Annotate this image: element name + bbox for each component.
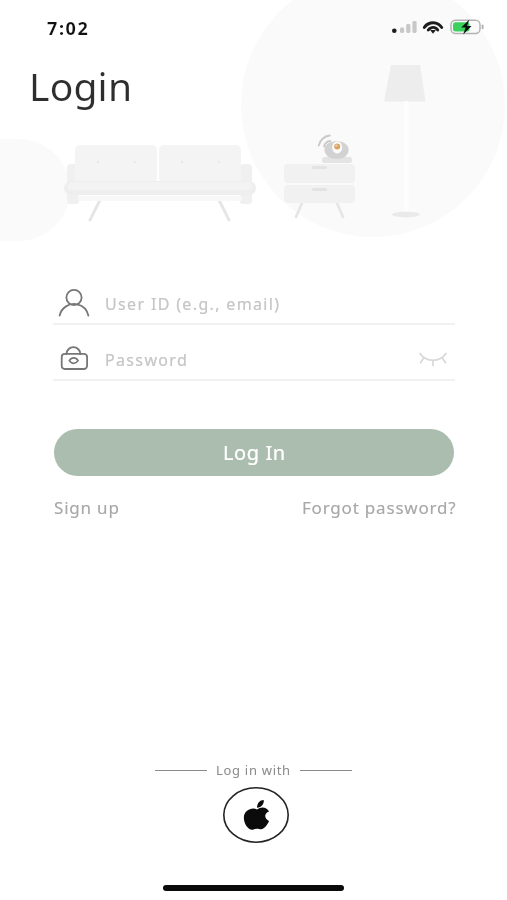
button[interactable]: Log In [54,429,454,476]
staticText: Password [105,349,189,371]
button[interactable]: User ID (e.g., email) [53,285,455,323]
staticText: Forgot password? [302,496,457,519]
button[interactable]: Log in with Apple [223,787,289,843]
button[interactable]: Show password [415,344,451,376]
staticText: Login [29,59,133,112]
button[interactable]: Sign up [54,496,120,519]
staticText: 7:02 [47,16,90,41]
button[interactable]: Forgot password? [302,496,457,519]
staticText: User ID (e.g., email) [105,293,281,315]
staticText: Log in with [216,761,291,779]
staticText: Log In [223,439,286,466]
button[interactable]: Password [53,341,455,379]
